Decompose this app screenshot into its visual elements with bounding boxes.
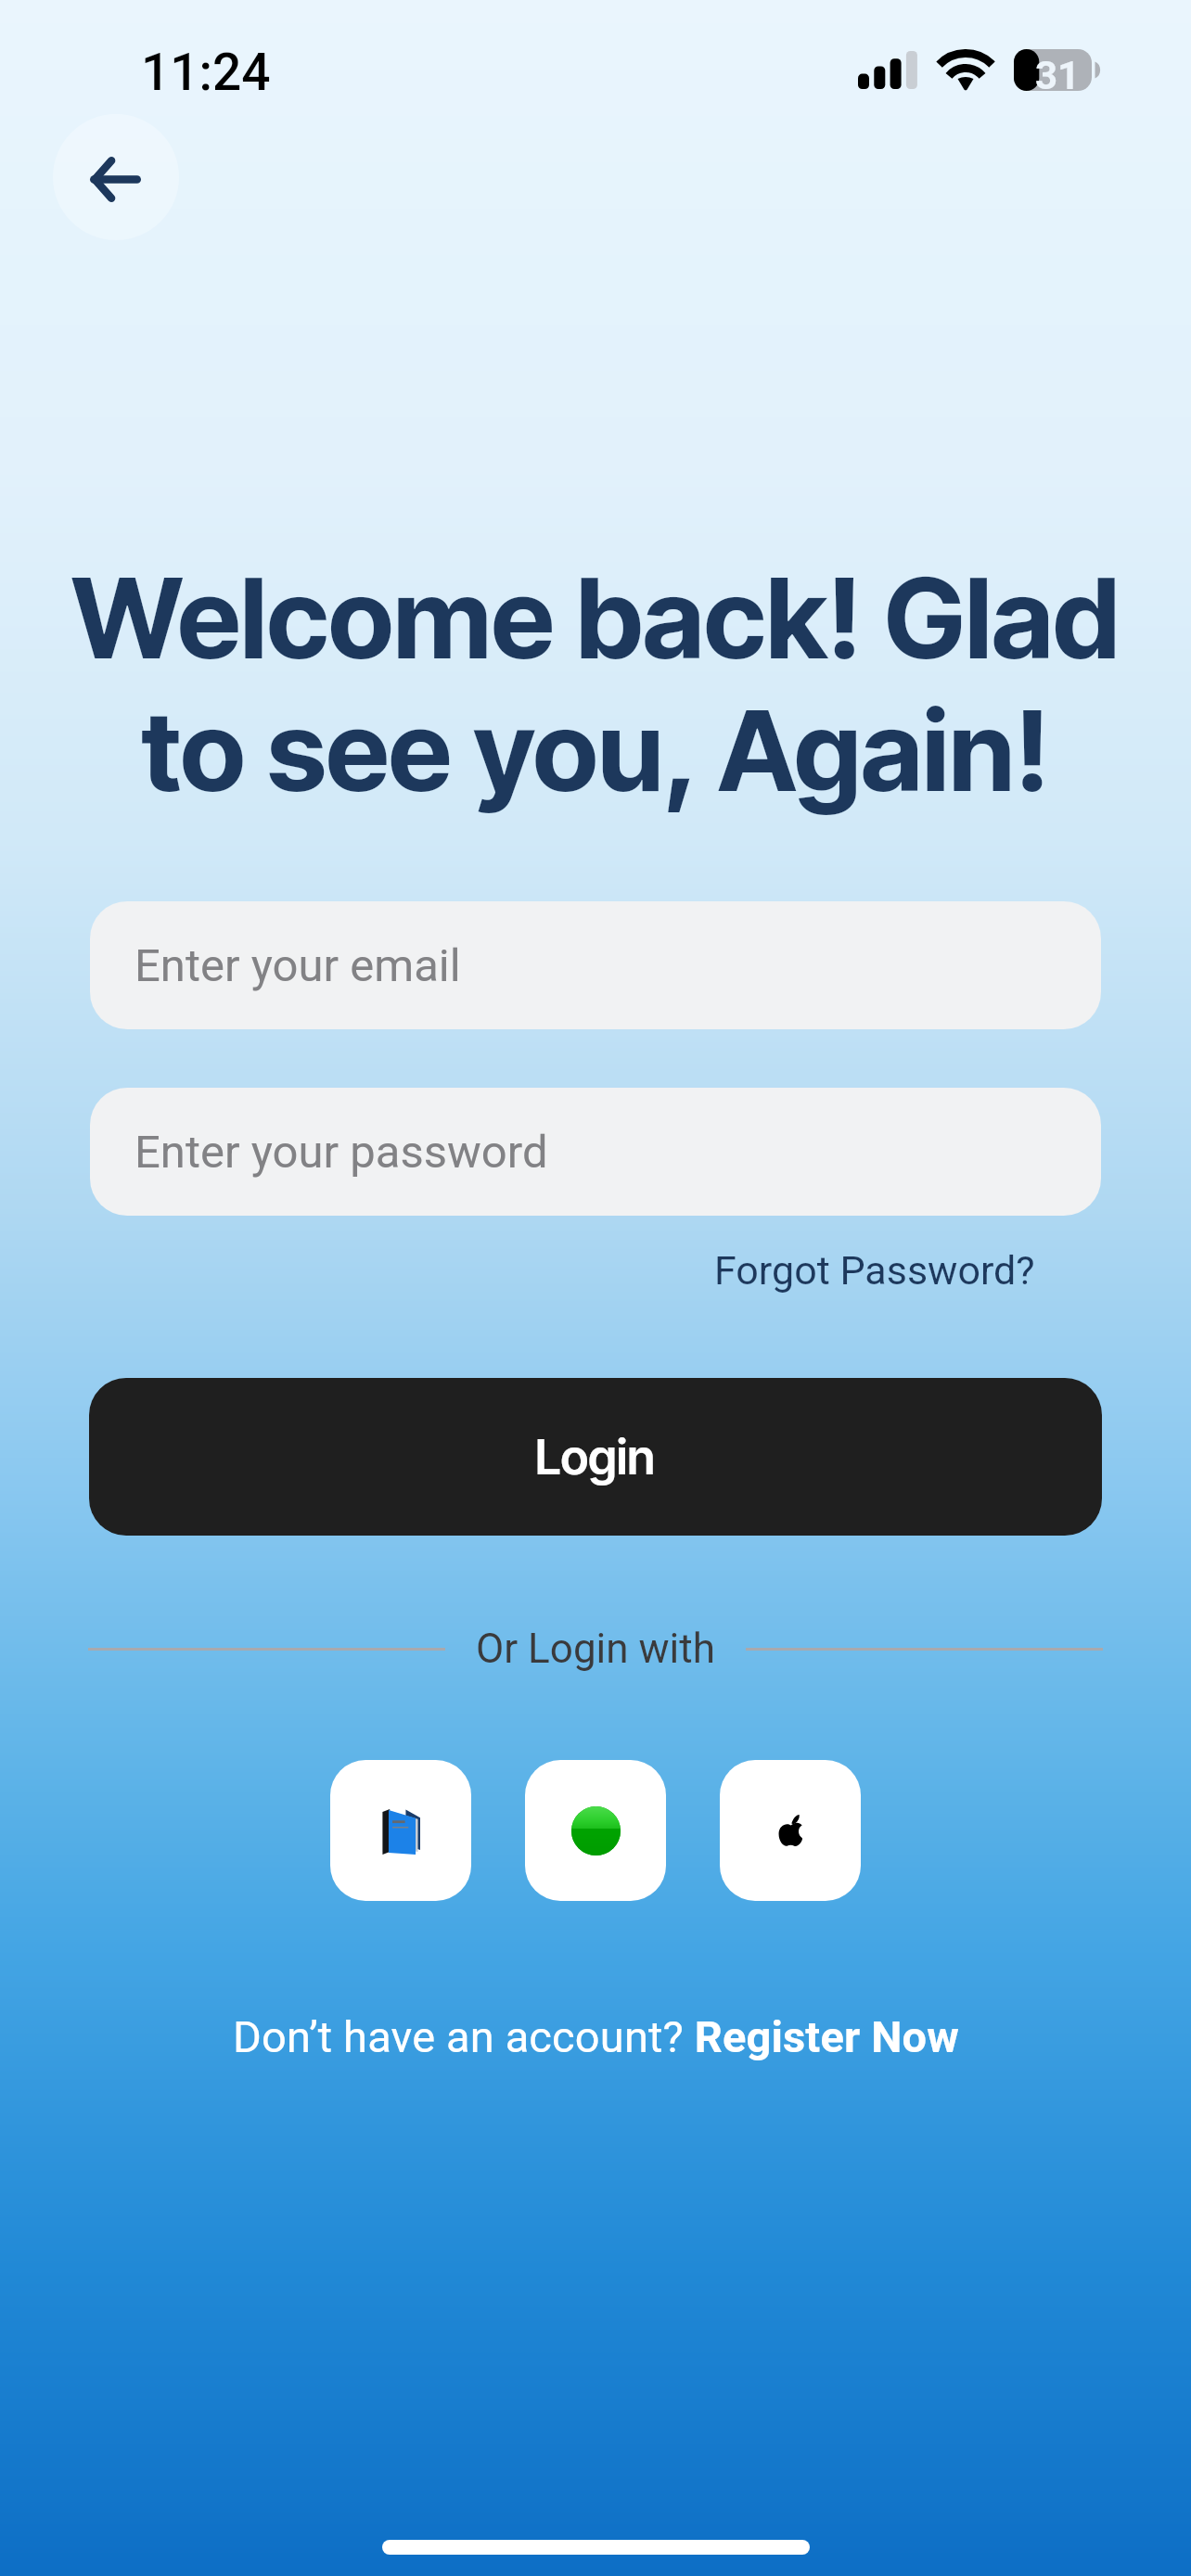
staticText: Or Login with — [476, 1625, 715, 1673]
button[interactable]: Login — [89, 1378, 1102, 1536]
button[interactable]: Enter your email — [90, 901, 1101, 1029]
button[interactable]: Facebook — [330, 1760, 471, 1901]
staticText: 11:24 — [141, 43, 271, 102]
button[interactable]: Don’t have an account? Register Now — [227, 2004, 965, 2070]
button[interactable]: Google — [525, 1760, 666, 1901]
button[interactable]: Enter your password — [90, 1088, 1101, 1216]
button[interactable]: Back — [53, 114, 179, 240]
button[interactable]: Apple — [720, 1760, 861, 1901]
staticText: Welcome back! Glad to see you, Again! — [26, 551, 1165, 818]
staticText: Forgot Password? — [714, 1247, 1035, 1294]
button[interactable]: Forgot Password? — [711, 1242, 1039, 1299]
staticText: Login — [535, 1428, 656, 1486]
staticText: Enter your email — [134, 939, 461, 992]
staticText: 31 — [1035, 53, 1081, 98]
staticText: Don’t have an account? Register Now — [233, 2011, 959, 2062]
staticText: Enter your password — [134, 1126, 548, 1179]
